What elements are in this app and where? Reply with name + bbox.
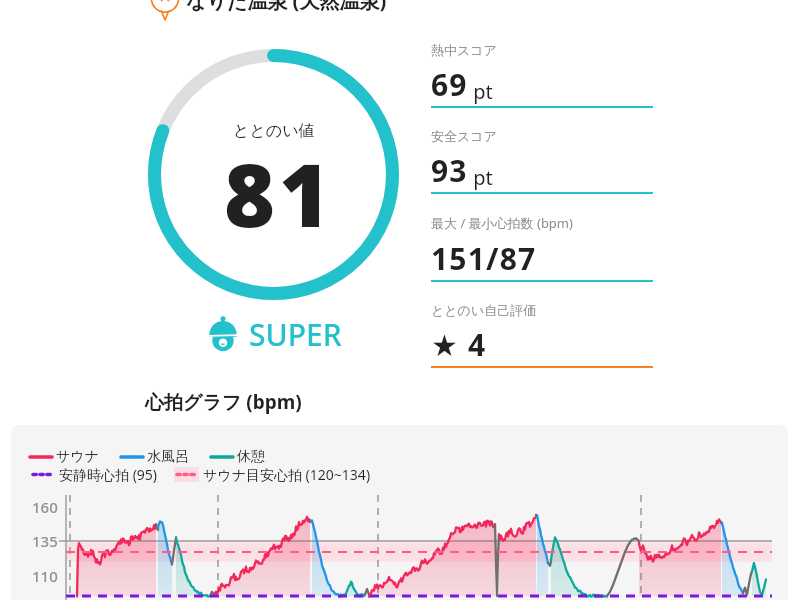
- button[interactable]: SUPER: [206, 312, 342, 356]
- staticText: SUPER: [249, 314, 342, 355]
- staticText: サウナ目安心拍 (120~134): [203, 465, 371, 484]
- staticText: 心拍グラフ (bpm): [145, 389, 302, 415]
- button[interactable]: ととのい自己評価: [431, 302, 653, 388]
- staticText: ととのい自己評価: [431, 302, 537, 318]
- staticText: 151/87: [431, 238, 537, 279]
- staticText: 水風呂: [147, 448, 189, 466]
- staticText: 69: [431, 64, 468, 105]
- staticText: 安全スコア: [431, 128, 497, 144]
- staticText: 93: [431, 150, 468, 191]
- other: Onsen location: [148, 0, 182, 23]
- button[interactable]: 最大 / 最小心拍数 (bpm): [431, 214, 653, 302]
- staticText: 110: [32, 566, 58, 586]
- staticText: 160: [32, 497, 58, 517]
- staticText: pt: [468, 164, 493, 191]
- staticText: 135: [32, 531, 58, 551]
- staticText: pt: [468, 78, 493, 105]
- staticText: サウナ: [56, 448, 99, 466]
- staticText: 81: [224, 134, 334, 252]
- button[interactable]: 安全スコア: [431, 128, 653, 214]
- staticText: 安静時心拍 (95): [59, 465, 158, 484]
- staticText: なりた温泉 (天然温泉): [186, 0, 387, 14]
- button[interactable]: サウナ: [11, 425, 788, 600]
- button[interactable]: 熱中スコア: [431, 42, 653, 128]
- staticText: ★ 4: [431, 324, 487, 365]
- staticText: ととのい値: [233, 121, 315, 141]
- button[interactable]: Onsen location: [0, 0, 534, 17]
- staticText: 休憩: [237, 448, 265, 466]
- staticText: 最大 / 最小心拍数 (bpm): [431, 214, 573, 232]
- staticText: 熱中スコア: [431, 42, 497, 58]
